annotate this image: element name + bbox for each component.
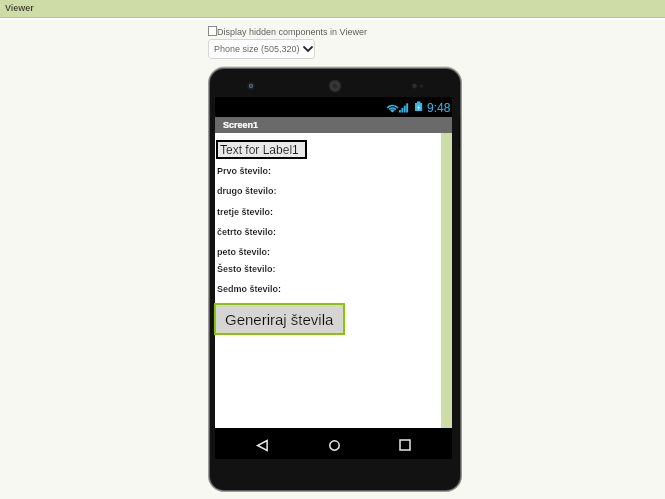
staticText: Phone size (505,320) — [214, 44, 300, 54]
button[interactable]: Text for Label1 — [218, 142, 305, 157]
staticText: Sedmo število: — [217, 284, 282, 294]
button[interactable]: Recent apps — [392, 432, 418, 458]
staticText: Šesto število: — [217, 264, 276, 274]
button[interactable]: Display hidden components in Viewer — [208, 26, 367, 36]
staticText: Viewer — [5, 3, 34, 13]
staticText: tretje število: — [217, 207, 274, 217]
button[interactable]: Generiraj števila — [216, 305, 343, 333]
button[interactable]: Back — [249, 432, 275, 458]
staticText: Display hidden components in Viewer — [217, 27, 367, 37]
staticText: 9:48 — [427, 101, 451, 114]
staticText: Screen1 — [223, 120, 259, 130]
button[interactable]: Phone size — [208, 39, 315, 59]
button[interactable]: Home — [321, 432, 347, 458]
staticText: Prvo število: — [217, 166, 272, 176]
staticText: četrto število: — [217, 227, 277, 237]
staticText: drugo število: — [217, 186, 277, 196]
staticText: peto število: — [217, 247, 271, 257]
staticText: Generiraj števila — [225, 311, 334, 328]
staticText: Text for Label1 — [220, 143, 299, 156]
